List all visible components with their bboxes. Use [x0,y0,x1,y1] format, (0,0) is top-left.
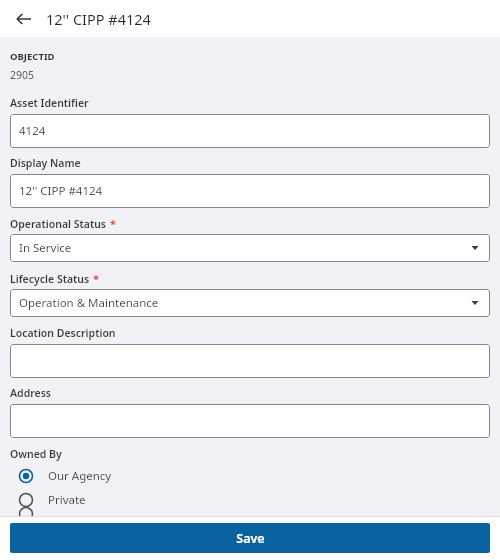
button[interactable]: Operation & Maintenance [10,289,490,317]
staticText: In Service [19,240,72,256]
button[interactable]: Private [10,488,490,512]
button[interactable]: Other [10,512,490,516]
button[interactable]: Save [10,523,490,553]
staticText: 12'' CIPP #4124 [46,9,151,29]
staticText: OBJECTID [10,50,55,63]
staticText: 12'' CIPP #4124 [19,183,103,199]
button[interactable]: 4124 [10,114,490,148]
staticText: Asset Identifier [10,96,89,110]
button[interactable]: In Service [10,234,490,262]
staticText: Operation & Maintenance [19,295,159,311]
staticText: Operational Status [10,217,107,231]
staticText: Location Description [10,326,116,340]
staticText: Owned By [10,447,62,461]
staticText: 2905 [10,68,35,82]
button[interactable] [10,404,490,438]
staticText: Our Agency [48,468,112,484]
staticText: * [110,216,116,231]
button[interactable] [10,344,490,378]
staticText: 4124 [19,123,46,139]
staticText: Save [236,530,265,547]
staticText: * [93,271,99,286]
staticText: Display Name [10,156,81,170]
staticText: Lifecycle Status [10,272,90,286]
button[interactable]: 12'' CIPP #4124 [10,174,490,208]
staticText: Address [10,386,52,400]
button[interactable]: Our Agency [10,464,490,488]
button[interactable]: Back [11,6,37,32]
staticText: Private [48,492,86,508]
